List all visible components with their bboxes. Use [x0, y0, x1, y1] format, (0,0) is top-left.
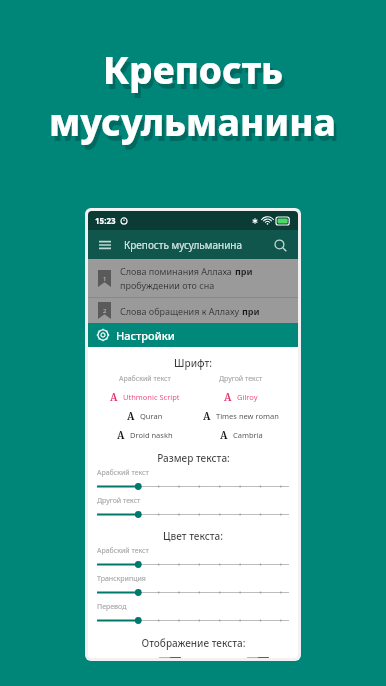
button[interactable]: Search	[271, 236, 289, 254]
staticText: Цвет текста:	[163, 529, 223, 543]
staticText: Крепость	[103, 44, 284, 94]
staticText: 1	[103, 275, 107, 283]
button[interactable]: Транскрипция	[97, 657, 193, 658]
button[interactable]: A	[110, 390, 180, 404]
button[interactable]: Menu	[97, 237, 113, 253]
staticText: Перевод	[97, 602, 127, 612]
button[interactable]	[97, 509, 289, 520]
staticText: 2	[103, 307, 107, 315]
staticText: при	[235, 265, 253, 277]
button[interactable]: A	[224, 390, 258, 404]
staticText: Крепость	[106, 49, 287, 99]
staticText: Слова обращения к Аллаху	[120, 305, 242, 317]
staticText: Крепость мусульманина	[124, 238, 243, 252]
staticText: Арабский текст	[97, 546, 149, 556]
staticText: 15:23	[95, 215, 116, 226]
button[interactable]: 1	[88, 259, 298, 297]
button[interactable]	[97, 615, 289, 626]
staticText: A	[127, 409, 135, 423]
staticText: A	[220, 428, 228, 442]
button[interactable]: Настройки	[88, 323, 298, 347]
button[interactable]: A	[203, 409, 279, 423]
staticText: Арабский текст	[97, 468, 149, 478]
staticText: Шрифт:	[174, 356, 212, 370]
staticText: Times new roman	[216, 411, 279, 421]
button[interactable]: A	[127, 409, 163, 423]
staticText: пробуждении ото сна	[120, 279, 215, 291]
button[interactable]: 2	[88, 298, 298, 323]
staticText: при	[242, 305, 260, 317]
staticText: A	[110, 390, 118, 404]
staticText: Quran	[140, 411, 163, 421]
button[interactable]	[97, 481, 289, 492]
staticText: A	[224, 390, 232, 404]
button[interactable]: Toggle on	[247, 657, 269, 658]
staticText: мусульманина	[49, 96, 337, 146]
staticText: Настройки	[116, 328, 175, 343]
staticText: Транскрипция	[97, 574, 146, 584]
button[interactable]	[97, 587, 289, 598]
staticText: Отображение текста:	[141, 636, 246, 650]
staticText: Другой текст	[219, 374, 263, 384]
staticText: A	[203, 409, 211, 423]
staticText: Gilroy	[237, 392, 258, 402]
button[interactable]	[97, 559, 289, 570]
staticText: A	[117, 428, 125, 442]
staticText: Другой текст	[97, 496, 141, 506]
staticText: Droid naskh	[130, 430, 173, 440]
button[interactable]: Перевод	[193, 657, 289, 658]
button[interactable]: A	[220, 428, 263, 442]
staticText: Uthmonic Script	[123, 392, 180, 402]
button[interactable]: Toggle on	[159, 657, 181, 658]
staticText: Cambria	[233, 430, 263, 440]
staticText: Слова поминания Аллаха	[120, 265, 235, 277]
staticText: Арабский текст	[119, 374, 171, 384]
button[interactable]: A	[117, 428, 173, 442]
staticText: Размер текста:	[157, 451, 230, 465]
staticText: мусульманина	[52, 101, 340, 151]
